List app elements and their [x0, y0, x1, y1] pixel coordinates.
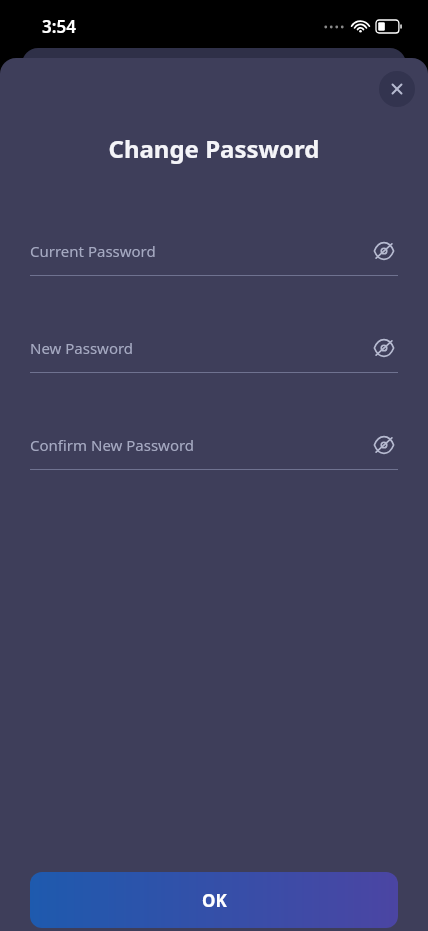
staticText: OK — [202, 889, 227, 912]
staticText: 3:54 — [42, 15, 76, 38]
button[interactable]: Confirm New Password — [30, 431, 398, 470]
button[interactable]: Current Password — [30, 237, 398, 276]
staticText: Current Password — [30, 241, 370, 261]
button[interactable]: New Password — [30, 334, 398, 373]
staticText: New Password — [30, 338, 370, 358]
button[interactable]: Show password — [370, 334, 398, 362]
button[interactable]: OK — [30, 872, 398, 928]
staticText: Change Password — [0, 132, 428, 165]
staticText: Confirm New Password — [30, 435, 370, 455]
button[interactable]: Show password — [370, 237, 398, 265]
button[interactable]: Close — [379, 71, 415, 107]
button[interactable]: Show password — [370, 431, 398, 459]
